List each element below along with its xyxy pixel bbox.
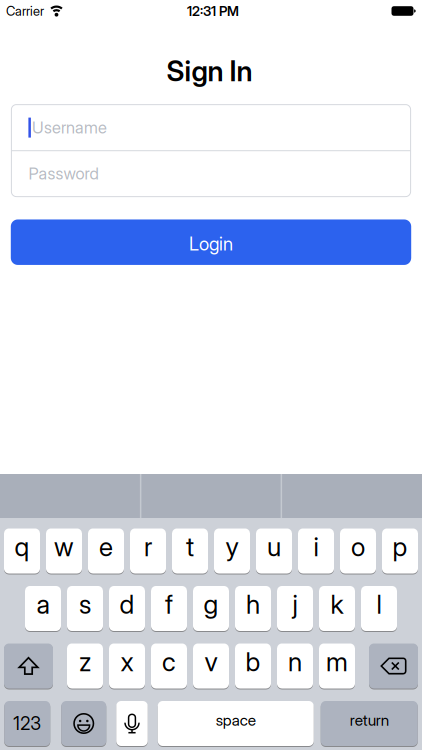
button[interactable]: m <box>319 643 355 689</box>
staticText: l <box>376 589 381 620</box>
staticText: Login <box>189 232 233 255</box>
staticText: p <box>392 531 407 563</box>
button[interactable]: 123 <box>4 700 50 746</box>
staticText: e <box>99 531 113 563</box>
staticText: z <box>79 646 91 678</box>
staticText: n <box>288 646 302 678</box>
button[interactable]: k <box>319 585 355 631</box>
button[interactable]: p <box>382 528 418 574</box>
button[interactable]: l <box>361 585 397 631</box>
button[interactable]: y <box>214 528 250 574</box>
staticText: j <box>292 589 297 620</box>
button[interactable]: r <box>130 528 166 574</box>
staticText: x <box>120 646 133 678</box>
button[interactable]: return <box>321 700 418 746</box>
staticText: i <box>313 531 318 563</box>
staticText: o <box>351 531 365 563</box>
button[interactable]: i <box>298 528 334 574</box>
button[interactable]: Shift <box>4 643 53 689</box>
staticText: 12:31 PM <box>187 3 239 19</box>
staticText: b <box>245 646 260 678</box>
button[interactable]: w <box>46 528 82 574</box>
button[interactable]: d <box>109 585 145 631</box>
button[interactable]: s <box>67 585 103 631</box>
button[interactable]: b <box>235 643 271 689</box>
button[interactable]: c <box>151 643 187 689</box>
button[interactable]: x <box>109 643 145 689</box>
button[interactable]: space <box>158 700 314 746</box>
button[interactable]: e <box>88 528 124 574</box>
staticText: 123 <box>13 713 41 734</box>
staticText: space <box>216 711 256 729</box>
button[interactable]: j <box>277 585 313 631</box>
button[interactable]: f <box>151 585 187 631</box>
staticText: Carrier <box>6 3 44 19</box>
button[interactable]: Dictate <box>116 700 148 746</box>
staticText: w <box>54 531 74 563</box>
staticText: Sign In <box>166 54 252 88</box>
staticText: f <box>165 589 173 620</box>
button[interactable]: q <box>4 528 40 574</box>
staticText: c <box>162 646 176 678</box>
staticText: Username <box>32 118 107 138</box>
staticText: v <box>204 646 217 678</box>
button[interactable]: Login <box>11 219 411 265</box>
staticText: r <box>144 531 152 563</box>
staticText: y <box>225 531 238 563</box>
button[interactable]: Password <box>11 151 411 197</box>
button[interactable]: a <box>25 585 61 631</box>
button[interactable]: Username <box>11 105 411 151</box>
button[interactable]: v <box>193 643 229 689</box>
staticText: u <box>267 531 281 563</box>
button[interactable]: Delete <box>369 643 418 689</box>
staticText: q <box>14 531 29 563</box>
button[interactable]: n <box>277 643 313 689</box>
button[interactable]: o <box>340 528 376 574</box>
staticText: h <box>246 589 260 620</box>
staticText: m <box>326 646 348 678</box>
button[interactable]: u <box>256 528 292 574</box>
staticText: s <box>79 589 91 620</box>
staticText: return <box>350 711 389 729</box>
staticText: d <box>119 589 134 620</box>
button[interactable]: z <box>67 643 103 689</box>
staticText: k <box>330 589 343 620</box>
staticText: Password <box>28 164 98 184</box>
button[interactable]: g <box>193 585 229 631</box>
button[interactable]: h <box>235 585 271 631</box>
button[interactable]: Emoji <box>61 700 106 746</box>
staticText: g <box>203 589 218 620</box>
staticText: t <box>186 531 194 563</box>
staticText: a <box>36 589 49 620</box>
button[interactable]: t <box>172 528 208 574</box>
